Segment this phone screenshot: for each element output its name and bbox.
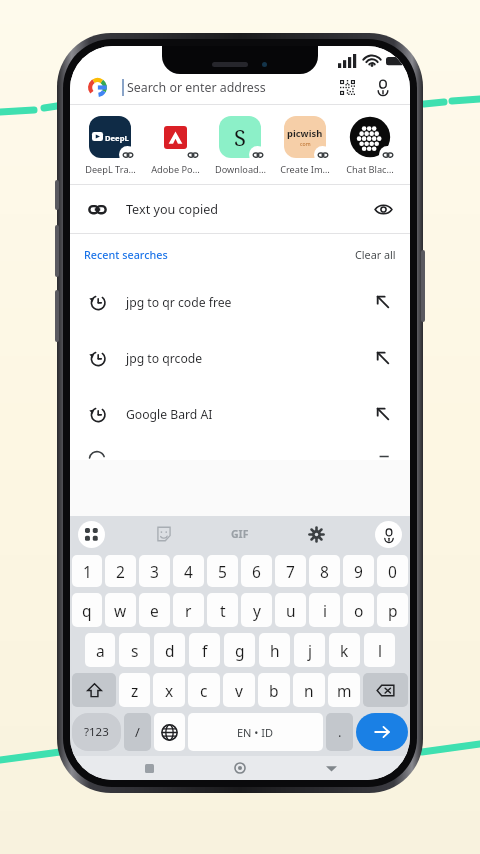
button[interactable]: r bbox=[173, 593, 204, 627]
staticText: w bbox=[114, 600, 127, 621]
button[interactable]: Search bbox=[356, 713, 408, 751]
staticText: Text you copied bbox=[126, 201, 219, 218]
button[interactable]: e bbox=[139, 593, 170, 627]
button[interactable]: w bbox=[105, 593, 136, 627]
button[interactable]: m bbox=[328, 673, 360, 707]
staticText: 6 bbox=[252, 561, 261, 582]
staticText: x bbox=[165, 680, 174, 701]
button[interactable]: Stickers bbox=[149, 519, 179, 549]
button[interactable]: Recent searches bbox=[84, 247, 168, 262]
button[interactable]: a bbox=[85, 633, 115, 667]
button[interactable]: u bbox=[275, 593, 306, 627]
button[interactable]: S bbox=[209, 114, 271, 176]
button[interactable]: 3 bbox=[139, 555, 170, 587]
staticText: y bbox=[253, 600, 261, 621]
button[interactable]: z bbox=[119, 673, 150, 707]
button[interactable]: Voice input bbox=[375, 521, 402, 548]
staticText: ?123 bbox=[84, 724, 109, 740]
staticText: c bbox=[200, 680, 208, 701]
button[interactable]: Adobe Po… bbox=[144, 114, 206, 176]
button[interactable]: Voice search bbox=[370, 74, 396, 100]
button[interactable]: 1 bbox=[72, 555, 102, 587]
button[interactable]: Home bbox=[228, 756, 252, 780]
button[interactable]: EN • ID bbox=[188, 713, 323, 751]
button[interactable]: Clear all bbox=[355, 247, 396, 262]
staticText: f bbox=[202, 640, 208, 661]
staticText: n bbox=[304, 680, 314, 701]
button[interactable]: picwish bbox=[274, 114, 336, 176]
staticText: a bbox=[96, 640, 105, 661]
staticText: GIF bbox=[231, 527, 249, 541]
staticText: b bbox=[269, 680, 279, 701]
button[interactable]: 9 bbox=[343, 555, 374, 587]
button[interactable]: jpg to qr code free bbox=[70, 274, 410, 330]
button[interactable]: t bbox=[207, 593, 238, 627]
staticText: r bbox=[185, 600, 192, 621]
button[interactable]: . bbox=[326, 713, 353, 751]
button[interactable]: f bbox=[189, 633, 220, 667]
button[interactable]: 7 bbox=[275, 555, 306, 587]
staticText: EN • ID bbox=[237, 725, 274, 740]
button[interactable]: l bbox=[364, 633, 395, 667]
staticText: 9 bbox=[354, 561, 363, 582]
button[interactable]: Scan QR code bbox=[334, 74, 360, 100]
button[interactable]: o bbox=[343, 593, 374, 627]
button[interactable]: j bbox=[294, 633, 325, 667]
button[interactable]: Recent apps bbox=[137, 756, 161, 780]
button[interactable]: 6 bbox=[241, 555, 272, 587]
button[interactable]: Change language bbox=[154, 713, 185, 751]
button[interactable] bbox=[84, 74, 110, 100]
staticText: / bbox=[135, 723, 140, 741]
button[interactable]: Text you copied bbox=[70, 185, 410, 233]
button[interactable]: Chat Blac… bbox=[339, 114, 401, 176]
button[interactable]: p bbox=[377, 593, 408, 627]
button[interactable]: DeepL bbox=[79, 114, 141, 176]
button[interactable]: jpg to qrcode bbox=[70, 330, 410, 386]
staticText: 7 bbox=[286, 561, 295, 582]
button[interactable]: Google Bard AI bbox=[70, 386, 410, 442]
button[interactable]: Back bbox=[319, 756, 343, 780]
button[interactable]: v bbox=[223, 673, 255, 707]
staticText: S bbox=[234, 122, 246, 152]
button[interactable]: / bbox=[124, 713, 151, 751]
staticText: 4 bbox=[184, 561, 193, 582]
button[interactable]: y bbox=[241, 593, 272, 627]
button[interactable]: g bbox=[224, 633, 255, 667]
button[interactable]: 0 bbox=[377, 555, 408, 587]
button[interactable]: Insert jpg to qrcode bbox=[370, 345, 396, 371]
button[interactable]: b bbox=[258, 673, 290, 707]
button[interactable]: i bbox=[309, 593, 340, 627]
button[interactable]: n bbox=[293, 673, 325, 707]
button[interactable]: Backspace bbox=[363, 673, 408, 707]
button[interactable]: Insert Google Bard AI bbox=[370, 401, 396, 427]
staticText: v bbox=[235, 680, 243, 701]
button[interactable]: s bbox=[119, 633, 150, 667]
button[interactable]: c bbox=[188, 673, 220, 707]
button[interactable]: Keyboard switcher bbox=[78, 521, 105, 548]
button[interactable]: k bbox=[329, 633, 360, 667]
button[interactable]: Shift bbox=[72, 673, 116, 707]
button[interactable]: x bbox=[153, 673, 185, 707]
staticText: e bbox=[150, 600, 159, 621]
button[interactable]: d bbox=[154, 633, 185, 667]
button[interactable]: 4 bbox=[173, 555, 204, 587]
button[interactable]: GIF bbox=[223, 517, 257, 551]
button[interactable]: q bbox=[72, 593, 102, 627]
button[interactable]: h bbox=[259, 633, 290, 667]
button[interactable]: Show copied text bbox=[370, 196, 396, 222]
staticText: Search or enter address bbox=[127, 79, 266, 96]
staticText: 1 bbox=[83, 561, 92, 582]
staticText: Adobe Po… bbox=[151, 163, 200, 176]
button[interactable]: ?123 bbox=[72, 713, 121, 751]
button[interactable]: Keyboard settings bbox=[301, 519, 331, 549]
button[interactable]: 8 bbox=[309, 555, 340, 587]
staticText: o bbox=[354, 600, 364, 621]
staticText: z bbox=[131, 680, 139, 701]
button[interactable]: 5 bbox=[207, 555, 238, 587]
button[interactable]: 2 bbox=[105, 555, 136, 587]
staticText: m bbox=[337, 680, 352, 701]
button[interactable]: Insert jpg to qr code free bbox=[370, 289, 396, 315]
staticText: k bbox=[340, 640, 349, 661]
staticText: DeepL bbox=[105, 133, 129, 143]
staticText: 2 bbox=[116, 561, 125, 582]
